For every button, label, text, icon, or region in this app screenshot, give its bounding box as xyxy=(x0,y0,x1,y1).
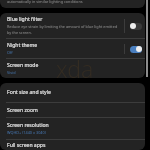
staticText: Reduce eye strain by limiting the amount… xyxy=(7,24,118,35)
staticText: Font size and style xyxy=(7,89,51,96)
button[interactable]: Blue light filter xyxy=(0,13,145,38)
button[interactable]: Screen mode xyxy=(0,59,145,78)
staticText: automatically in similar lighting condit… xyxy=(7,0,83,4)
staticText: Screen zoom xyxy=(7,107,38,114)
staticText: Night theme xyxy=(7,42,38,49)
staticText: Off xyxy=(7,50,13,55)
button[interactable]: Night theme xyxy=(0,39,145,58)
button[interactable]: Toggle on xyxy=(129,44,142,54)
staticText: Blue light filter xyxy=(7,16,43,23)
button[interactable]: Screen zoom xyxy=(0,103,145,117)
button[interactable]: Screen resolution xyxy=(0,118,145,139)
button[interactable]: automatically in similar lighting condit… xyxy=(0,0,145,8)
staticText: Vivid xyxy=(7,70,16,75)
staticText: WQHD+ (1440 x 3040) xyxy=(7,130,46,135)
staticText: Screen resolution xyxy=(7,122,49,129)
staticText: Full screen apps xyxy=(7,142,46,149)
staticText: Screen mode xyxy=(7,62,39,69)
button[interactable]: Font size and style xyxy=(0,83,145,102)
button[interactable]: Toggle off xyxy=(129,21,142,31)
staticText: xda xyxy=(56,53,94,84)
button[interactable]: Full screen apps xyxy=(0,140,145,150)
